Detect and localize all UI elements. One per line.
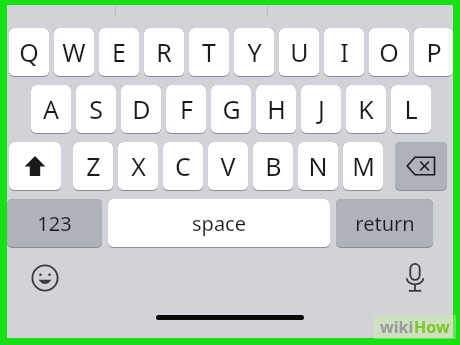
staticText: D — [132, 92, 151, 126]
staticText: S — [89, 92, 103, 126]
staticText: M — [352, 149, 375, 183]
staticText: L — [404, 92, 418, 126]
staticText: Z — [86, 149, 101, 183]
staticText: space — [192, 210, 246, 237]
staticText: A — [43, 92, 59, 126]
button[interactable]: Z — [73, 142, 113, 191]
staticText: K — [358, 92, 374, 126]
staticText: C — [175, 149, 191, 183]
button[interactable]: E — [99, 28, 139, 77]
button[interactable]: F — [166, 85, 206, 134]
button[interactable]: Q — [9, 28, 49, 77]
button[interactable]: M — [343, 142, 383, 191]
staticText: X — [131, 149, 146, 183]
button[interactable]: return — [336, 199, 433, 248]
button[interactable]: R — [144, 28, 184, 77]
staticText: H — [267, 92, 286, 126]
staticText: U — [290, 35, 309, 69]
staticText: E — [112, 35, 126, 69]
button[interactable]: I — [324, 28, 364, 77]
staticText: V — [220, 149, 236, 183]
button[interactable]: B — [253, 142, 293, 191]
button[interactable]: L — [391, 85, 431, 134]
button[interactable]: T — [189, 28, 229, 77]
button[interactable]: A — [31, 85, 71, 134]
button[interactable]: S — [76, 85, 116, 134]
staticText: B — [265, 149, 282, 183]
button[interactable]: W — [54, 28, 94, 77]
staticText: 123 — [37, 210, 72, 237]
button[interactable]: P — [414, 28, 453, 77]
button[interactable]: C — [163, 142, 203, 191]
staticText: O — [379, 35, 399, 69]
button[interactable]: Delete — [395, 142, 447, 191]
button[interactable]: Dictation — [395, 258, 435, 298]
button[interactable]: J — [301, 85, 341, 134]
staticText: W — [62, 35, 86, 69]
button[interactable]: Shift — [9, 142, 61, 191]
button[interactable]: 123 — [7, 199, 102, 248]
button[interactable]: U — [279, 28, 319, 77]
button[interactable]: V — [208, 142, 248, 191]
staticText: P — [426, 35, 442, 69]
staticText: G — [222, 92, 241, 126]
button[interactable]: K — [346, 85, 386, 134]
button[interactable]: G — [211, 85, 251, 134]
button[interactable]: N — [298, 142, 338, 191]
staticText: J — [318, 92, 325, 126]
button[interactable]: D — [121, 85, 161, 134]
button[interactable]: space — [108, 199, 330, 248]
staticText: F — [180, 92, 193, 126]
button[interactable]: O — [369, 28, 409, 77]
staticText: I — [340, 35, 349, 69]
staticText: R — [156, 35, 172, 69]
staticText: Q — [19, 35, 39, 69]
button[interactable]: H — [256, 85, 296, 134]
button[interactable]: Y — [234, 28, 274, 77]
staticText: return — [355, 210, 415, 237]
button[interactable]: Emoji — [25, 258, 65, 298]
staticText: wiki — [380, 316, 414, 338]
staticText: How — [414, 316, 450, 338]
staticText: T — [202, 35, 216, 69]
button[interactable]: X — [118, 142, 158, 191]
staticText: Y — [247, 35, 262, 69]
staticText: N — [308, 149, 328, 183]
